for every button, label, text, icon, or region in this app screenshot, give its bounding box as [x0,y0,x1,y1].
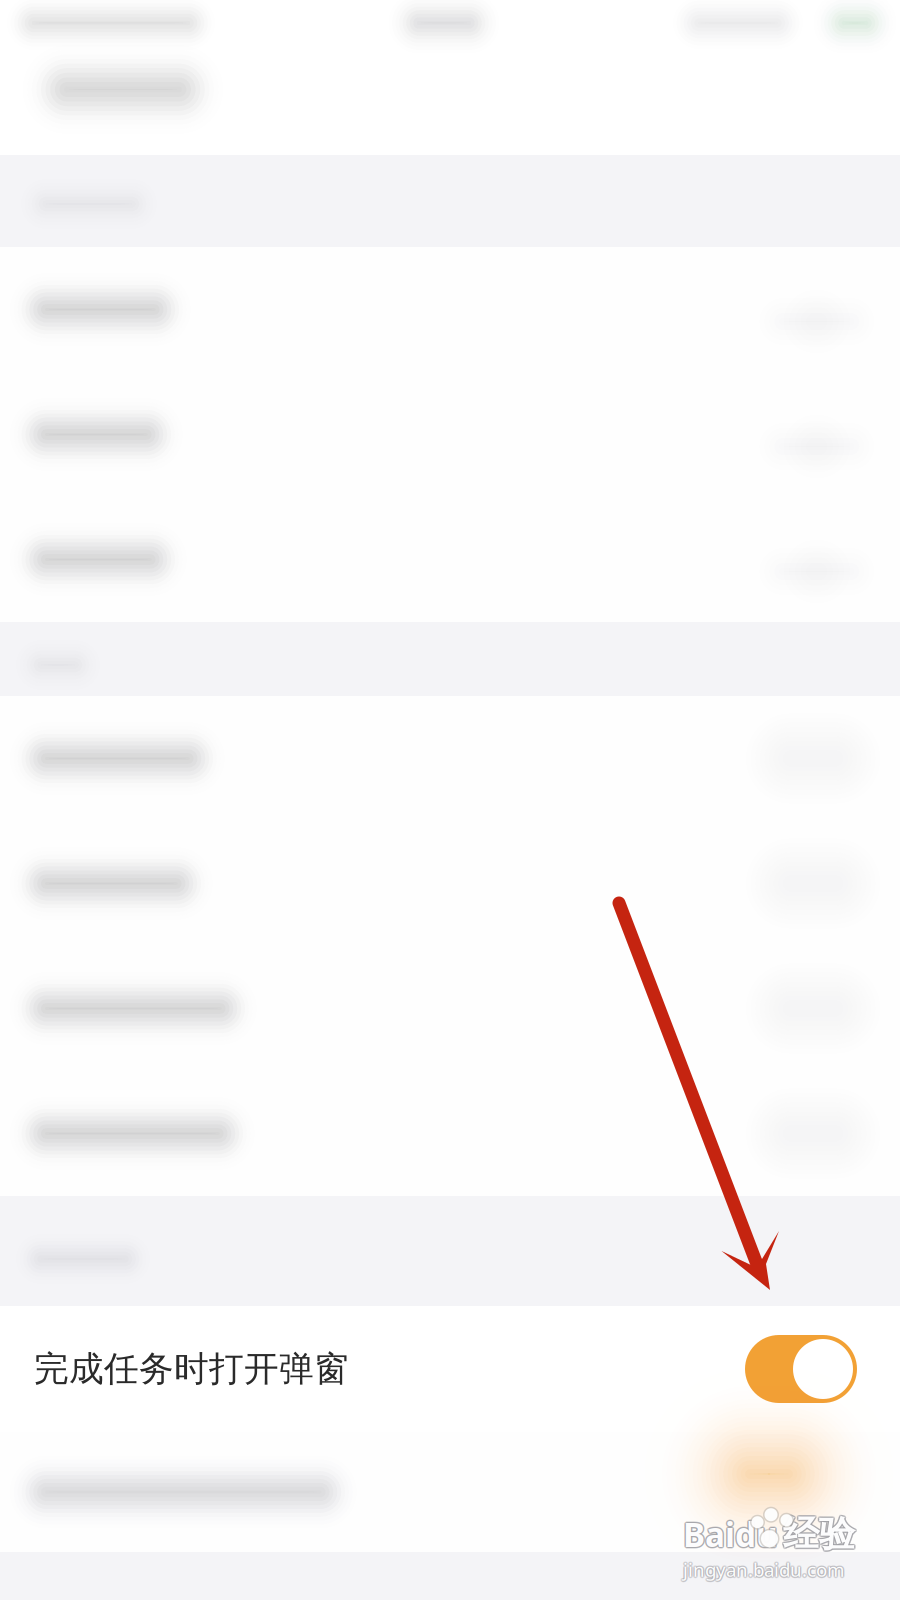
staticText: 经验 [784,1511,856,1555]
staticText: 经验 [783,1511,855,1555]
staticText: 经验 [784,1512,856,1556]
staticText: jingyan.baidu.com [684,1558,845,1583]
staticText: jingyan.baidu.com [682,1558,843,1583]
staticText: Baidu [682,1513,777,1557]
staticText: Baidu [683,1512,778,1556]
staticText: jingyan.baidu.com [682,1556,843,1581]
staticText: Baidu [684,1513,779,1557]
staticText: Baidu [684,1511,779,1555]
button[interactable] [0,372,900,497]
staticText: 经验 [783,1513,855,1558]
staticText: jingyan.baidu.com [684,1557,845,1582]
staticText: jingyan.baidu.com [682,1557,843,1582]
button[interactable] [0,1071,900,1196]
staticText: 经验 [783,1512,855,1556]
staticText: Baidu [682,1511,777,1555]
staticText: 完成任务时打开弹窗 [34,1348,349,1390]
staticText: Baidu [684,1512,779,1556]
button[interactable] [0,247,900,372]
staticText: 经验 [782,1512,854,1556]
staticText: Baidu [682,1512,777,1556]
staticText: jingyan.baidu.com [684,1556,845,1581]
button[interactable]: 完成任务时打开弹窗 [0,1306,900,1432]
staticText: 经验 [782,1513,854,1557]
staticText: jingyan.baidu.com [683,1557,844,1582]
staticText: 经验 [784,1513,856,1557]
staticText: jingyan.baidu.com [683,1556,844,1581]
staticText: 经验 [782,1511,854,1555]
button[interactable] [0,497,900,622]
staticText: jingyan.baidu.com [683,1559,844,1583]
staticText: Baidu [683,1510,778,1555]
button[interactable] [0,1432,900,1552]
staticText: Baidu [683,1513,778,1558]
button[interactable] [0,821,900,946]
button[interactable] [0,946,900,1071]
button[interactable] [0,696,900,821]
